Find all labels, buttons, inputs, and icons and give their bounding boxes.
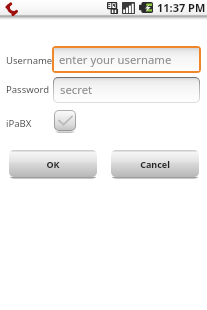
button[interactable]: enter your username (54, 48, 199, 71)
staticText: iPaBX (6, 117, 32, 130)
button[interactable]: OK (9, 150, 97, 178)
button[interactable]: iPaBX checkbox (54, 110, 77, 133)
staticText: Cancel (140, 158, 170, 170)
staticText: Password (6, 83, 49, 96)
staticText: OK (46, 158, 60, 170)
staticText: secret (60, 82, 93, 97)
staticText: Username (6, 54, 53, 67)
button[interactable]: Cancel (111, 150, 199, 178)
button[interactable]: secret (54, 78, 199, 102)
staticText: 11:37 PM (157, 0, 206, 15)
staticText: enter your username (59, 52, 172, 67)
